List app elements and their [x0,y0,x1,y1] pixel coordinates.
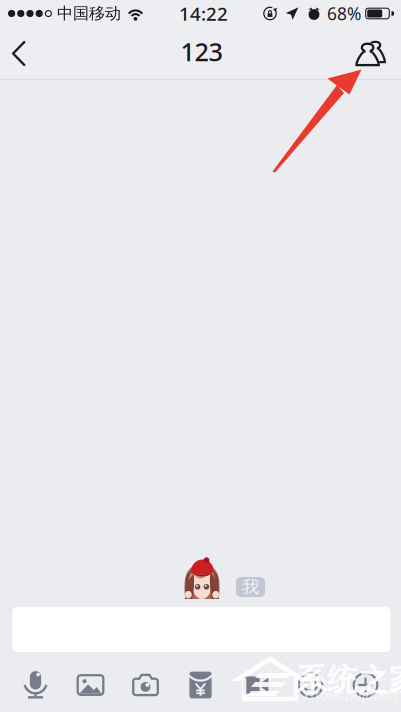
button[interactable]: Back [2,27,36,80]
button[interactable]: Stickers [283,662,338,708]
staticText: XITONGZHIJIA.NET [303,689,399,703]
staticText: 我 [242,576,259,598]
staticText: 系统之家 [296,661,401,699]
button[interactable]: More [338,662,393,708]
button[interactable]: Voice message [8,662,63,708]
button[interactable]: Camera [118,662,173,708]
button[interactable]: Red packet [173,662,228,708]
staticText: 68% [327,2,361,25]
staticText: 123 [180,35,222,68]
button[interactable]: Video call [228,662,283,708]
button[interactable]: Chat details [346,27,396,80]
button[interactable]: Photos [63,662,118,708]
staticText: 14:22 [179,1,228,26]
staticText: 中国移动 [57,4,121,23]
